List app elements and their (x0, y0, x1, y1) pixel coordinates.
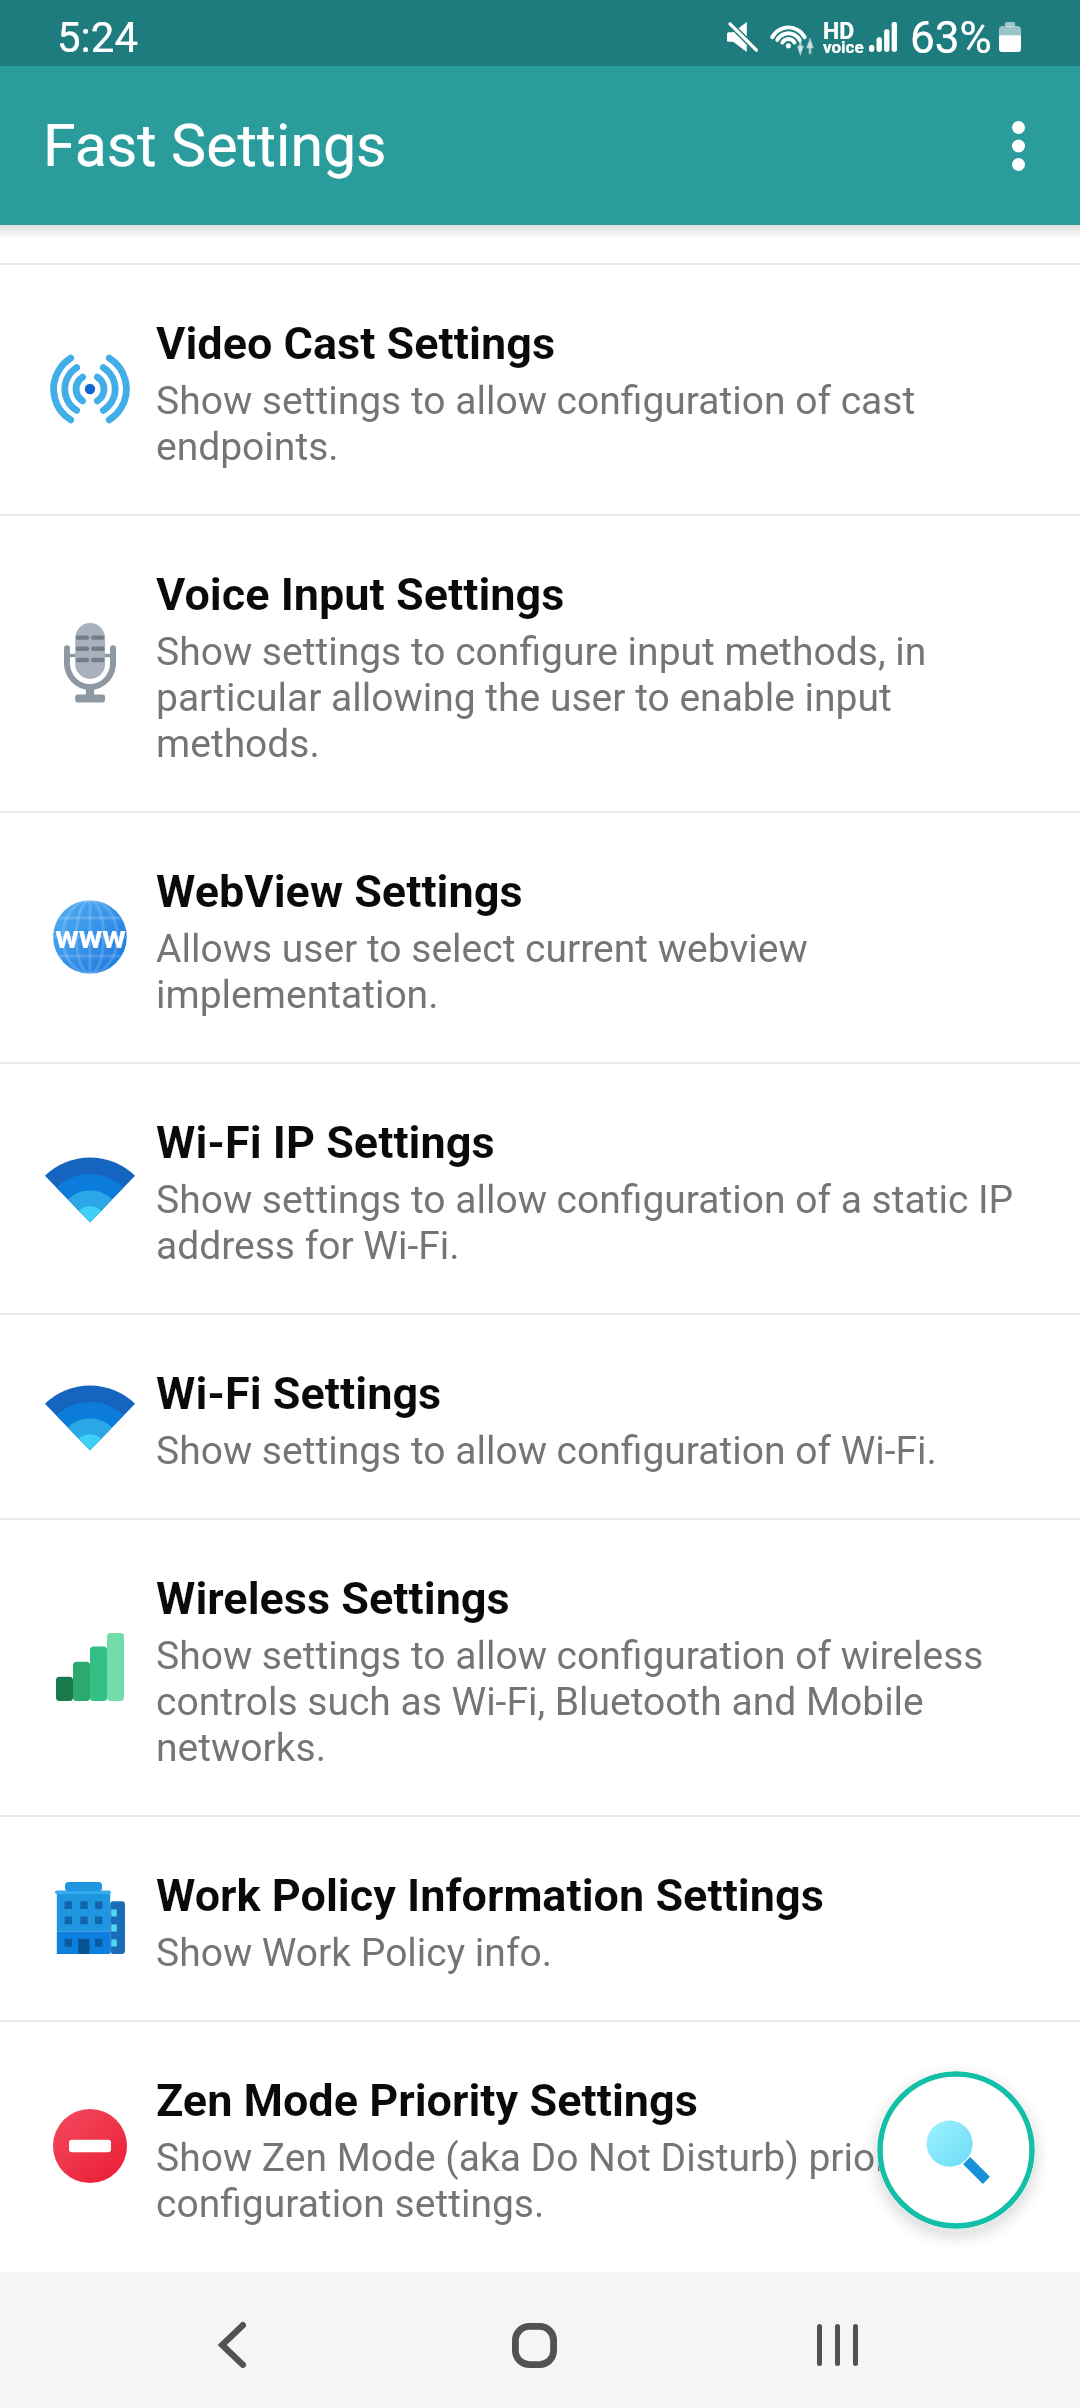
staticText: 5:24 (57, 13, 138, 62)
staticText: Wi-Fi Settings (156, 1367, 1012, 1420)
staticText: Show settings to configure input methods… (156, 629, 1026, 767)
staticText: Show settings to allow configuration of … (156, 1177, 1026, 1269)
button[interactable]: Voice Input Settings (0, 514, 1080, 811)
staticText: Show Zen Mode (aka Do Not Disturb) prior… (156, 2135, 1026, 2227)
staticText: Show settings to allow configuration of … (156, 1428, 1026, 1474)
button[interactable]: More options (968, 96, 1068, 196)
staticText: Zen Mode Priority Settings (156, 2074, 1012, 2127)
staticText: Show settings to allow configuration of … (156, 378, 1026, 470)
staticText: WebView Settings (156, 865, 1012, 918)
button[interactable]: Search (877, 2071, 1035, 2229)
staticText: 63% (910, 12, 992, 64)
button[interactable]: Home (434, 2277, 634, 2408)
staticText: Wireless Settings (156, 1572, 1012, 1625)
button[interactable]: Recent apps (737, 2277, 937, 2408)
staticText: Fast Settings (43, 111, 387, 180)
staticText: Show settings to allow configuration of … (156, 1633, 1026, 1771)
button[interactable]: Wi-Fi Settings (0, 1313, 1080, 1518)
staticText: Wi-Fi IP Settings (156, 1116, 1012, 1169)
button[interactable]: Video Cast Settings (0, 263, 1080, 514)
staticText: www (55, 918, 126, 956)
button[interactable]: Wi-Fi IP Settings (0, 1062, 1080, 1313)
staticText: Work Policy Information Settings (156, 1869, 1012, 1922)
staticText: Show Work Policy info. (156, 1930, 1026, 1976)
staticText: Video Cast Settings (156, 317, 1012, 370)
button[interactable]: Work Policy Information Settings (0, 1815, 1080, 2020)
button[interactable]: Zen Mode Priority Settings (0, 2020, 1080, 2271)
staticText: HD (823, 18, 855, 45)
button[interactable]: www (0, 811, 1080, 1062)
button[interactable]: Back (132, 2277, 332, 2408)
staticText: Allows user to select current webview im… (156, 926, 1026, 1018)
staticText: voice (823, 37, 864, 57)
staticText: Voice Input Settings (156, 568, 1012, 621)
button[interactable]: Wireless Settings (0, 1518, 1080, 1815)
